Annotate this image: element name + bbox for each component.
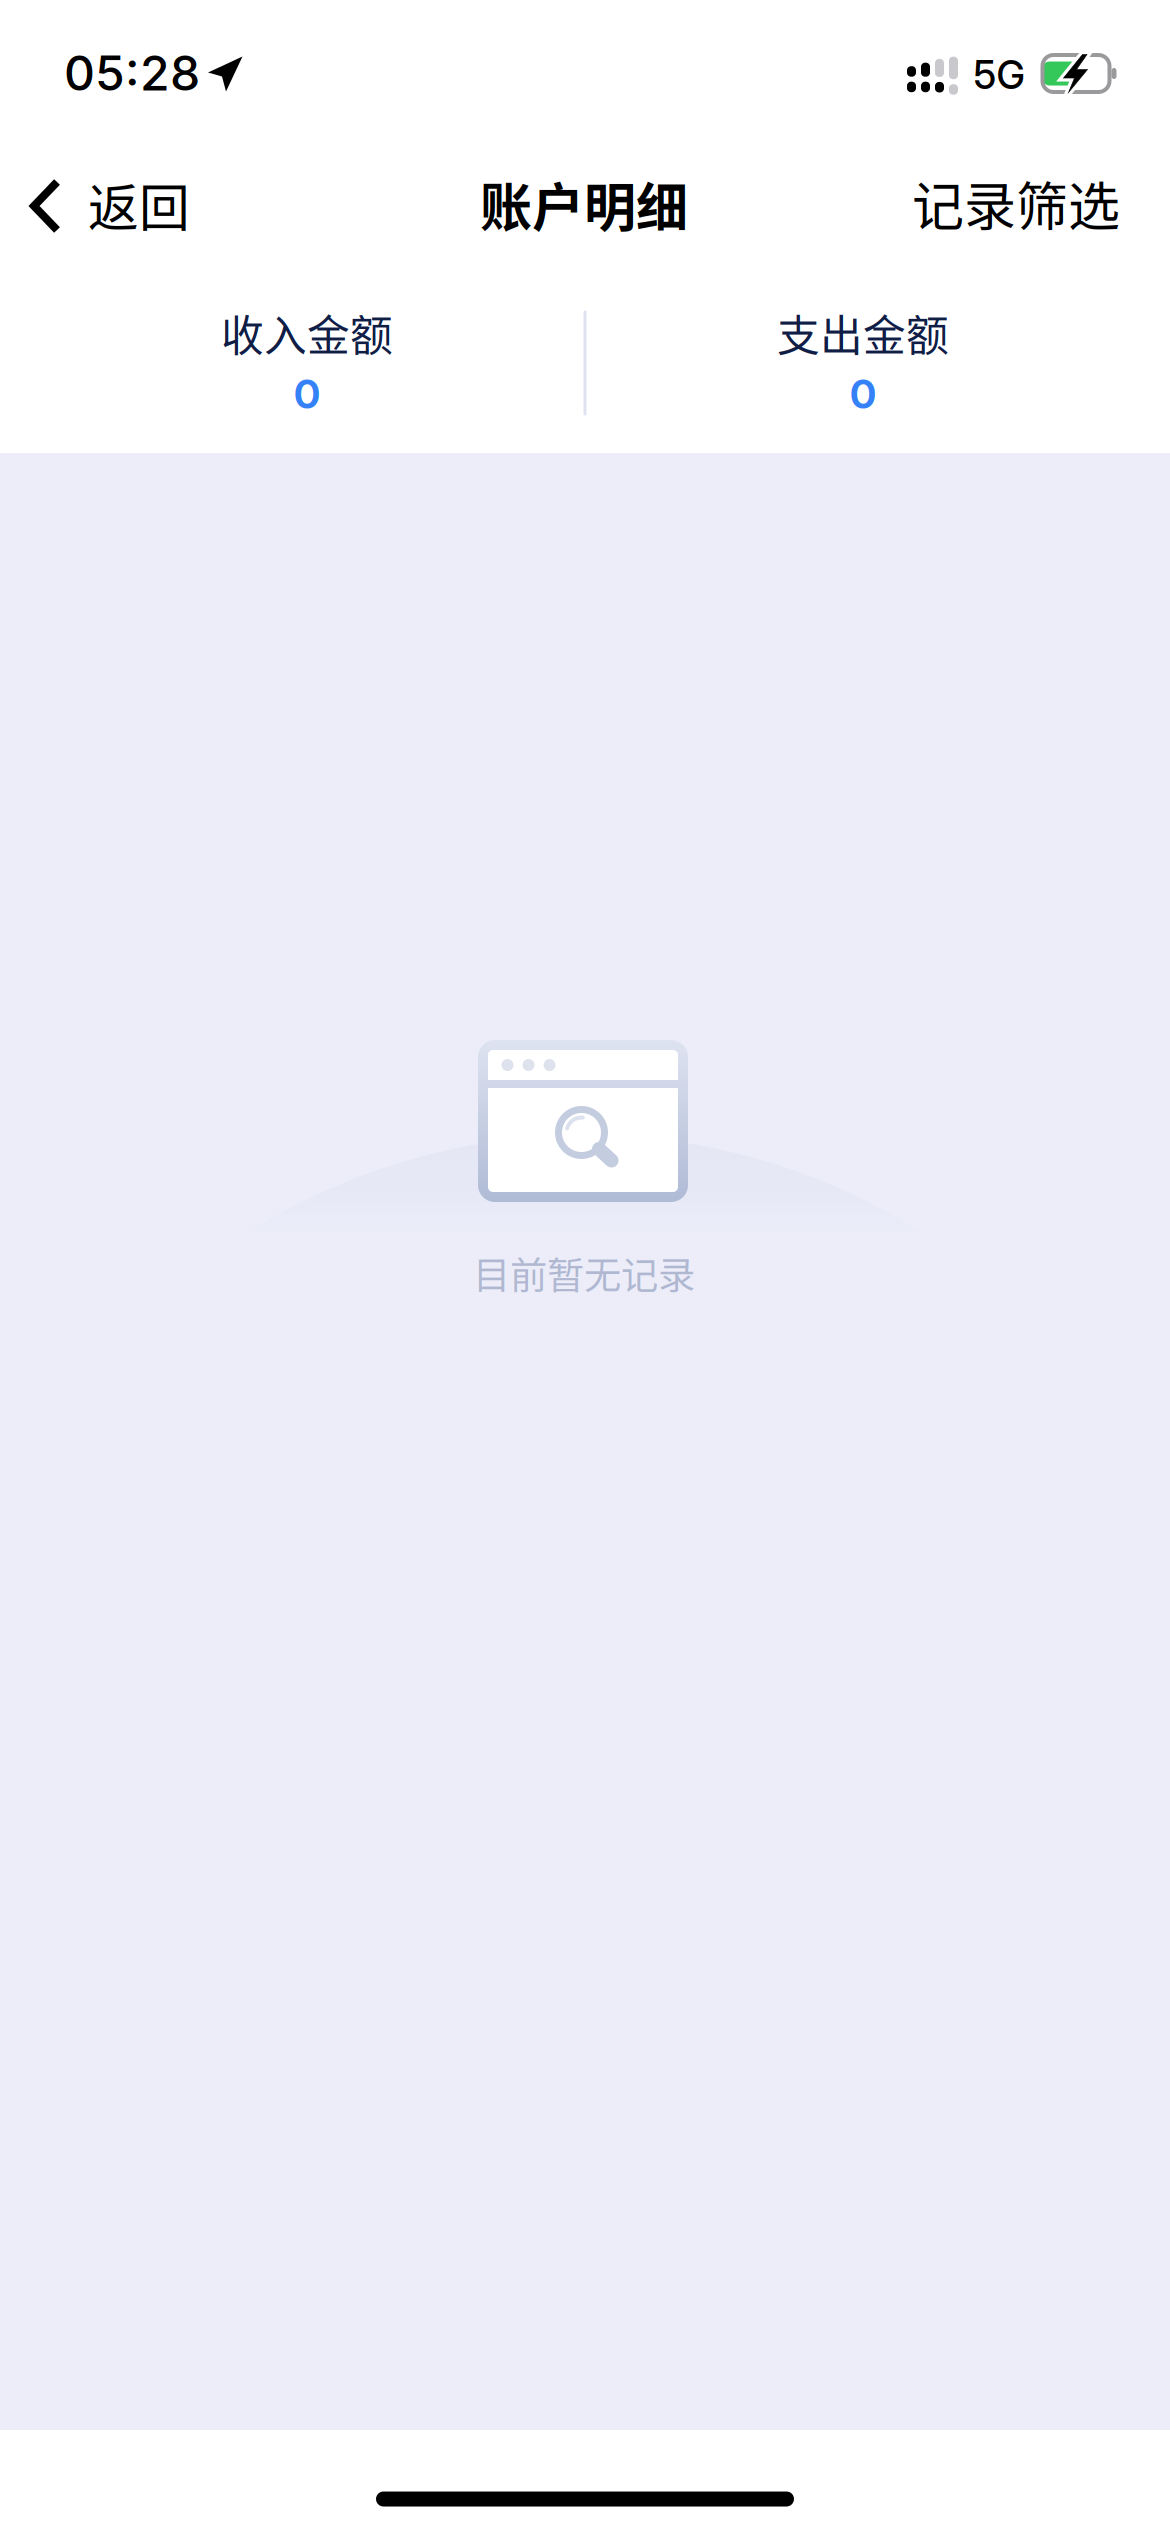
staticText: 目前暂无记录 (473, 1246, 695, 1300)
staticText: 0 (850, 370, 876, 418)
staticText: 5G (973, 52, 1024, 98)
staticText: 支出金额 (777, 302, 949, 364)
button[interactable]: 返回 (0, 148, 212, 260)
button[interactable]: 记录筛选 (886, 147, 1146, 259)
staticText: 05:28 (64, 44, 200, 102)
staticText: 收入金额 (221, 302, 393, 364)
staticText: 0 (294, 370, 320, 418)
staticText: 返回 (88, 168, 190, 241)
staticText: 账户明细 (480, 166, 688, 242)
staticText: 记录筛选 (912, 165, 1120, 241)
